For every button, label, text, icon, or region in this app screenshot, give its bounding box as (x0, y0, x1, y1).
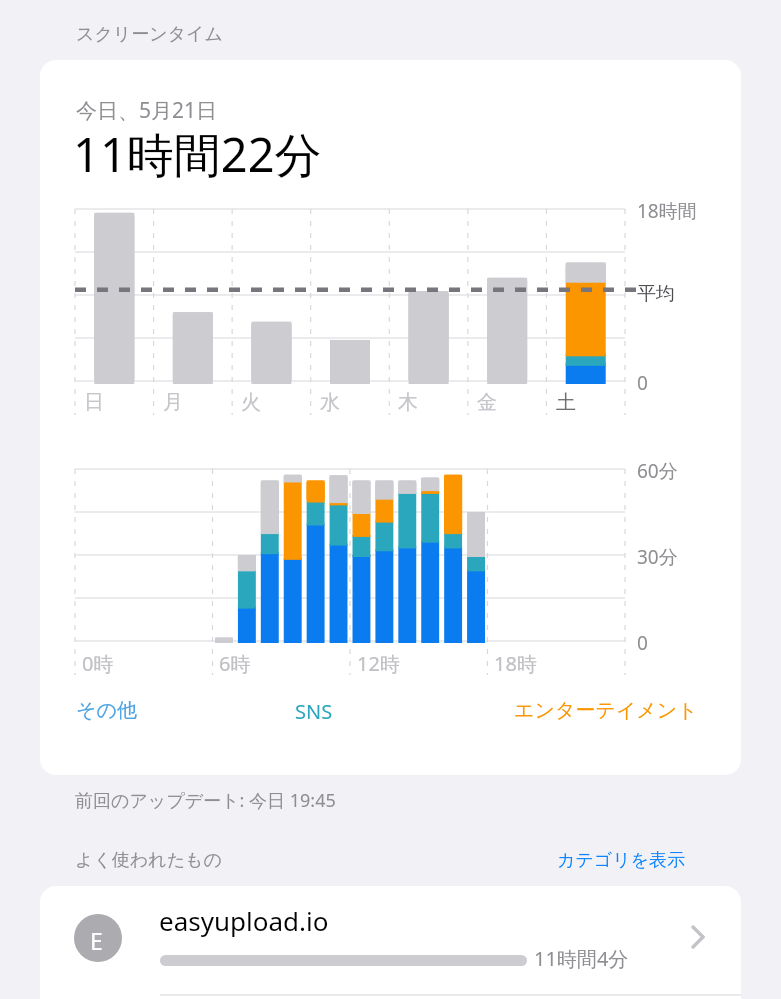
staticText: 11時間4分 (534, 945, 629, 972)
staticText: 平均 (637, 282, 675, 306)
staticText: その他 (76, 698, 137, 723)
button[interactable]: エンターテイメント (510, 695, 702, 731)
staticText: easyupload.io (159, 903, 329, 938)
button[interactable]: 今日、5月21日 (40, 60, 741, 775)
staticText: 60分 (637, 458, 678, 484)
staticText: 18時 (494, 650, 537, 677)
button[interactable]: E (40, 886, 741, 999)
staticText: 今日、5月21日 (76, 96, 218, 125)
staticText: 火 (241, 390, 261, 415)
button[interactable]: その他 (72, 695, 184, 731)
staticText: 30分 (637, 544, 678, 570)
staticText: E (90, 925, 103, 956)
staticText: 水 (320, 390, 340, 415)
staticText: 0 (637, 370, 648, 396)
button[interactable]: SNS (291, 695, 403, 731)
staticText: 0時 (82, 650, 114, 677)
staticText: SNS (295, 698, 333, 725)
staticText: カテゴリを表示 (557, 849, 686, 872)
staticText: 11時間22分 (73, 122, 322, 186)
staticText: よく使われたもの (75, 849, 222, 872)
button[interactable]: カテゴリを表示 (552, 841, 691, 880)
staticText: 前回のアップデート: 今日 19:45 (75, 788, 336, 813)
staticText: 12時 (357, 650, 400, 677)
staticText: エンターテイメント (514, 698, 698, 723)
staticText: 日 (84, 390, 104, 415)
staticText: 6時 (219, 650, 251, 677)
staticText: 0 (637, 630, 648, 656)
staticText: 木 (398, 390, 418, 415)
staticText: 土 (556, 390, 576, 415)
staticText: スクリーンタイム (76, 23, 223, 46)
staticText: 18時間 (637, 198, 697, 224)
staticText: 金 (477, 390, 497, 415)
staticText: 月 (163, 390, 183, 415)
